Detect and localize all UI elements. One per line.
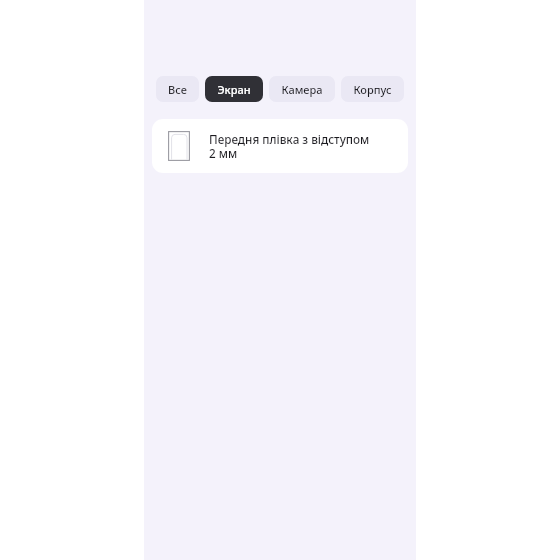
staticText: Передня плівка з відступом 2 мм: [209, 131, 370, 161]
button[interactable]: Все: [156, 76, 199, 102]
other: Передня плівка з відступом: [168, 131, 190, 161]
staticText: Все: [168, 82, 187, 97]
staticText: Камера: [281, 82, 323, 97]
staticText: Экран: [217, 82, 251, 97]
staticText: Корпус: [353, 82, 392, 97]
button[interactable]: Корпус: [341, 76, 404, 102]
button[interactable]: Камера: [269, 76, 335, 102]
button[interactable]: Передня плівка з відступом: [152, 119, 408, 173]
button[interactable]: Экран: [205, 76, 263, 102]
